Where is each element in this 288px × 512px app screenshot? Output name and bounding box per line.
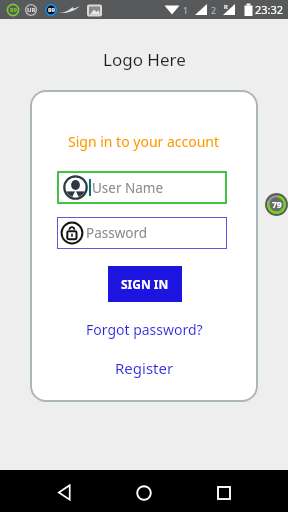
staticText: Password [86,224,148,242]
staticText: Logo Here [103,48,186,71]
staticText: 2 [211,4,217,16]
button[interactable] [209,478,239,508]
button[interactable]: User Name [57,171,227,204]
staticText: 23:32 [255,2,284,17]
button[interactable] [129,478,159,508]
button[interactable]: Password [57,217,227,249]
staticText: User Name [92,179,164,197]
button[interactable] [49,477,79,507]
button[interactable]: Register [30,358,258,378]
staticText: R [224,3,228,11]
button[interactable]: SIGN IN [108,266,182,302]
staticText: 89 [48,6,55,14]
staticText: Forgot password? [86,320,203,339]
staticText: 79 [272,199,282,211]
staticText: UR [27,6,36,14]
staticText: SIGN IN [121,276,169,292]
staticText: Sign in to your account [68,132,220,151]
staticText: Register [115,358,174,378]
staticText: 1 [183,4,189,16]
button[interactable]: Forgot password? [30,320,258,339]
staticText: 89 [10,6,17,14]
